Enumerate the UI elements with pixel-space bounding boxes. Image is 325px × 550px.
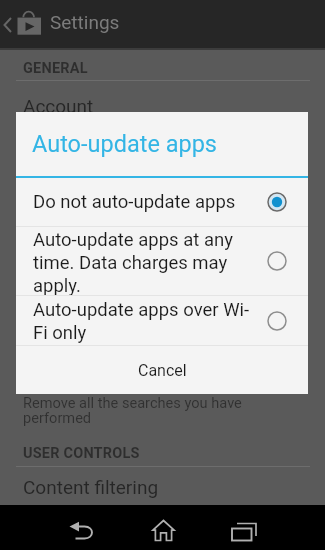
button[interactable]: Do not auto-update apps [16, 178, 308, 226]
button[interactable]: Recent apps [204, 505, 284, 550]
staticText: Settings [50, 11, 120, 33]
staticText: Auto-update apps over Wi-Fi only [33, 299, 262, 344]
button[interactable]: Back [41, 505, 121, 550]
staticText: Remove all the searches you have perform… [23, 394, 242, 427]
staticText: USER CONTROLS [23, 445, 140, 462]
button[interactable]: Auto-update apps over Wi-Fi only [16, 296, 308, 345]
button[interactable]: Auto-update apps at any time. Data charg… [16, 227, 308, 295]
staticText: Auto-update apps at any time. Data charg… [33, 229, 262, 297]
staticText: GENERAL [23, 60, 88, 77]
button[interactable]: Navigate up [0, 12, 16, 36]
staticText: Cancel [138, 361, 187, 380]
button[interactable]: Home [122, 505, 202, 550]
staticText: Account [23, 95, 94, 117]
staticText: Do not auto-update apps [33, 191, 262, 213]
staticText: Content filtering [23, 476, 159, 498]
staticText: Auto-update apps [32, 130, 217, 158]
button[interactable]: Cancel [16, 346, 308, 394]
